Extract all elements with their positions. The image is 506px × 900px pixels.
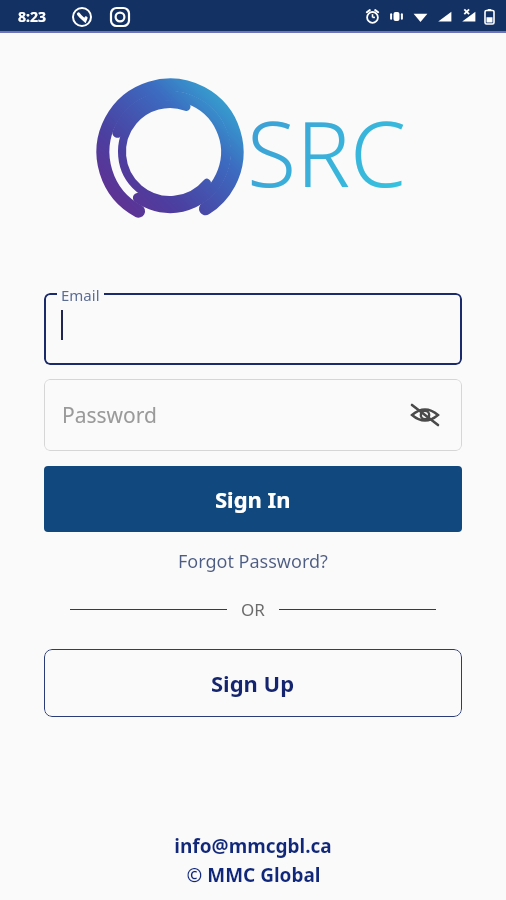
staticText: Sign In xyxy=(215,484,291,514)
button[interactable]: Forgot Password? xyxy=(170,547,336,576)
staticText: Forgot Password? xyxy=(178,549,328,574)
staticText: info@mmcgbl.ca xyxy=(174,833,332,859)
button[interactable]: Show password xyxy=(410,400,440,430)
button[interactable] xyxy=(44,293,462,365)
button[interactable]: Sign Up xyxy=(44,649,462,717)
staticText: OR xyxy=(241,598,265,621)
staticText: © MMC Global xyxy=(186,862,321,888)
button[interactable]: Password xyxy=(44,379,462,451)
staticText: Password xyxy=(62,401,157,430)
staticText: Email xyxy=(61,285,100,305)
staticText: 8:23 xyxy=(18,7,46,26)
button[interactable]: Sign In xyxy=(44,466,462,532)
staticText: SRC xyxy=(247,91,407,214)
staticText: Sign Up xyxy=(211,668,295,698)
